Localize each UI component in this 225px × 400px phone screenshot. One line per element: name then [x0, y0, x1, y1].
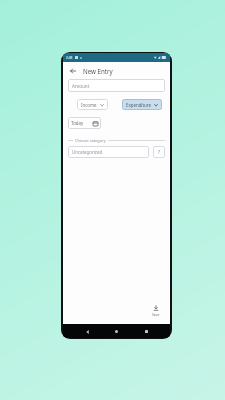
- staticText: Amount: [72, 83, 90, 89]
- button[interactable]: Recent apps: [141, 326, 152, 337]
- staticText: ?: [158, 149, 160, 155]
- staticText: 2:28: [66, 56, 73, 60]
- staticText: Today: [71, 120, 84, 126]
- staticText: Income: [81, 102, 97, 108]
- button[interactable]: Expenditure: [122, 99, 162, 110]
- button[interactable]: Add category: [153, 146, 165, 158]
- staticText: New Entry: [83, 67, 113, 75]
- button[interactable]: Income: [77, 99, 108, 110]
- button[interactable]: Today: [68, 117, 101, 129]
- staticText: Choose category: [75, 138, 106, 143]
- button[interactable]: Save: [150, 303, 162, 319]
- staticText: Expenditure: [126, 102, 151, 108]
- button[interactable]: Home: [111, 326, 122, 337]
- button[interactable]: Uncategorized: [68, 146, 149, 158]
- button[interactable]: Back: [67, 65, 79, 77]
- staticText: Save: [152, 312, 160, 317]
- button[interactable]: Amount: [68, 79, 165, 92]
- button[interactable]: Back: [82, 326, 93, 337]
- staticText: Uncategorized: [72, 149, 103, 155]
